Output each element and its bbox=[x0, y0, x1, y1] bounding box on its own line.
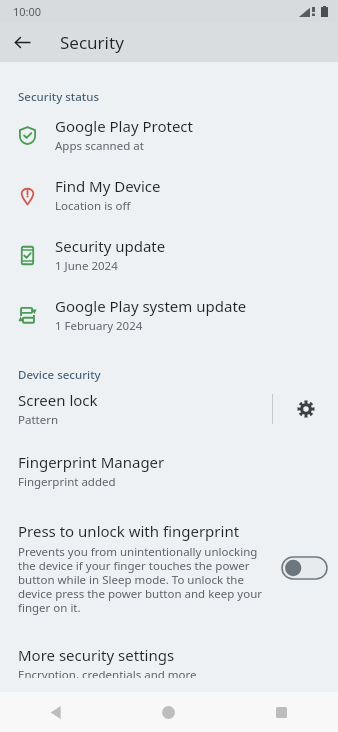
staticText: Google Play system update bbox=[55, 296, 247, 316]
button[interactable]: More security settings bbox=[0, 629, 338, 692]
button[interactable]: Home bbox=[112, 692, 225, 732]
button[interactable]: Back bbox=[8, 28, 36, 56]
button[interactable]: Fingerprint Manager bbox=[0, 435, 338, 504]
staticText: Press to unlock with fingerprint bbox=[18, 521, 240, 541]
staticText: Encryption, credentials and more bbox=[18, 667, 197, 678]
staticText: Fingerprint Manager bbox=[18, 452, 165, 472]
staticText: Apps scanned at bbox=[55, 138, 144, 154]
button[interactable]: Screen lock settings bbox=[273, 383, 338, 435]
staticText: 10:00 bbox=[13, 4, 42, 19]
staticText: Pattern bbox=[18, 412, 59, 428]
staticText: Device security bbox=[18, 367, 101, 383]
button[interactable]: Recent apps bbox=[225, 692, 338, 732]
button[interactable]: Google Play system update bbox=[0, 285, 338, 345]
button[interactable]: Press to unlock with fingerprint bbox=[0, 504, 338, 629]
button[interactable]: Google Play Protect bbox=[0, 105, 338, 165]
staticText: More security settings bbox=[18, 645, 175, 665]
staticText: Fingerprint added bbox=[18, 474, 116, 490]
button[interactable]: Find My Device bbox=[0, 165, 338, 225]
staticText: Security update bbox=[55, 236, 166, 256]
button[interactable]: Back bbox=[0, 692, 112, 732]
button[interactable]: Screen lock bbox=[0, 390, 272, 428]
button[interactable]: Press to unlock with fingerprint toggle bbox=[278, 553, 330, 583]
staticText: 1 June 2024 bbox=[55, 258, 118, 274]
staticText: Security bbox=[60, 31, 124, 54]
staticText: Security status bbox=[18, 89, 99, 105]
staticText: Location is off bbox=[55, 198, 131, 214]
staticText: Screen lock bbox=[18, 390, 98, 410]
button[interactable]: Security update bbox=[0, 225, 338, 285]
staticText: Google Play Protect bbox=[55, 116, 193, 136]
staticText: Prevents you from unintentionally unlock… bbox=[18, 544, 270, 615]
staticText: 1 February 2024 bbox=[55, 318, 143, 334]
staticText: Find My Device bbox=[55, 176, 161, 196]
